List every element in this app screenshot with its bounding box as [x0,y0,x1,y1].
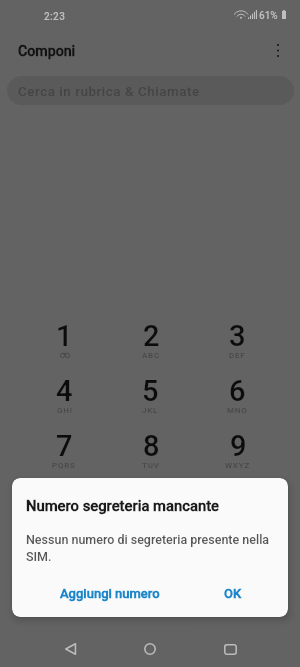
button[interactable]: Back [50,631,90,667]
button[interactable]: 7 [21,429,107,484]
button[interactable]: 5 [107,374,194,429]
staticText: 5 [142,374,159,408]
button[interactable]: OK [216,579,250,608]
staticText: Numero segreteria mancante [26,497,220,514]
button[interactable]: Recent apps [210,631,250,667]
button[interactable]: 3 [194,319,281,374]
staticText: 2:23 [44,11,66,23]
staticText: 0 [142,484,159,518]
button[interactable]: 1 [21,319,107,374]
staticText: 7 [56,429,73,463]
button[interactable]: 0 [107,484,194,539]
staticText: OK [224,586,242,601]
staticText: GHI [57,406,73,415]
button[interactable]: 9 [194,429,281,484]
button[interactable]: 6 [194,374,281,429]
staticText: WXYZ [225,461,251,470]
staticText: 9 [230,429,247,463]
staticText: JKL [142,406,159,415]
staticText: Componi [18,43,76,60]
staticText: 2 [143,319,160,353]
staticText: Cerca in rubrica & Chiamate [18,84,200,100]
staticText: 61% [259,10,278,22]
staticText: * [58,484,71,518]
button[interactable]: Cerca in rubrica & Chiamate [7,76,294,105]
staticText: Aggiungi numero [60,586,160,601]
staticText: 8 [143,429,160,463]
button[interactable]: # [194,484,281,539]
button[interactable]: 4 [21,374,107,429]
staticText: ABC [142,351,160,360]
button[interactable]: 8 [107,429,194,484]
staticText: DEF [229,351,246,360]
staticText: 4 [56,374,73,408]
button[interactable]: 2 [107,319,194,374]
staticText: 3 [229,319,246,353]
staticText: PQRS [52,461,76,470]
staticText: Nessun numero di segreteria presente nel… [26,532,280,564]
staticText: TUV [142,461,160,470]
staticText: 6 [229,374,246,408]
button[interactable]: Home [130,631,170,667]
staticText: MNO [227,406,248,415]
staticText: 1 [56,319,73,353]
button[interactable]: Aggiungi numero [52,579,168,608]
button[interactable]: More options [258,32,300,70]
button[interactable]: * [21,484,107,539]
